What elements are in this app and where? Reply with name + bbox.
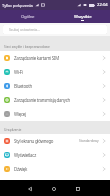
staticText: Sieci zwykłe i bezprzewodowe	[4, 44, 50, 48]
button[interactable]: Styl ekranu głównego	[0, 134, 110, 148]
staticText: Wyświetlacz	[14, 152, 101, 158]
staticText: Szukaj ustawienia...	[9, 27, 40, 32]
staticText: Więcej	[14, 111, 101, 117]
button[interactable]: Szukaj ustawienia...	[3, 25, 107, 34]
button[interactable]: Wszystkie	[55, 10, 110, 23]
staticText: 22:04	[97, 2, 108, 8]
button[interactable]: Home	[42, 180, 66, 196]
button[interactable]: Back	[18, 180, 42, 196]
staticText: Tylko połączenia	[2, 3, 33, 8]
button[interactable]: Ogólne	[0, 10, 55, 23]
button[interactable]: Wi-Fi	[0, 65, 110, 79]
staticText: Zarządzanie kartami SIM	[14, 55, 101, 61]
button[interactable]: Więcej	[0, 107, 110, 121]
staticText: Dźwięk	[14, 166, 101, 172]
staticText: Standardowy	[79, 139, 99, 143]
button[interactable]: Zarządzanie kartami SIM	[0, 51, 110, 65]
button[interactable]: Bluetooth	[0, 79, 110, 93]
staticText: Zarządzanie transmisją danych	[14, 97, 101, 103]
staticText: Urządzenie	[4, 127, 22, 131]
button[interactable]: Dźwięk	[0, 162, 110, 176]
button[interactable]: Zarządzanie transmisją danych	[0, 93, 110, 107]
button[interactable]: Wyświetlacz	[0, 148, 110, 162]
staticText: Styl ekranu głównego	[14, 138, 79, 144]
staticText: Wszystkie	[74, 13, 92, 19]
staticText: Bluetooth	[14, 83, 101, 89]
staticText: Ogólne	[21, 13, 35, 19]
button[interactable]: Recents	[66, 180, 90, 196]
staticText: Wi-Fi	[14, 69, 101, 75]
